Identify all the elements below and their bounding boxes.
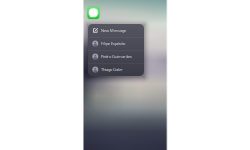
button[interactable]: Filipe Espósito (88, 37, 144, 50)
staticText: Filipe Espósito (101, 41, 125, 46)
button[interactable]: Thiago Galer (88, 63, 144, 76)
staticText: Thiago Galer (101, 67, 123, 72)
staticText: New Message (101, 28, 126, 33)
button[interactable]: Pedro Guimarães (88, 50, 144, 63)
staticText: Pedro Guimarães (101, 54, 132, 59)
button[interactable]: New Message (88, 24, 144, 37)
